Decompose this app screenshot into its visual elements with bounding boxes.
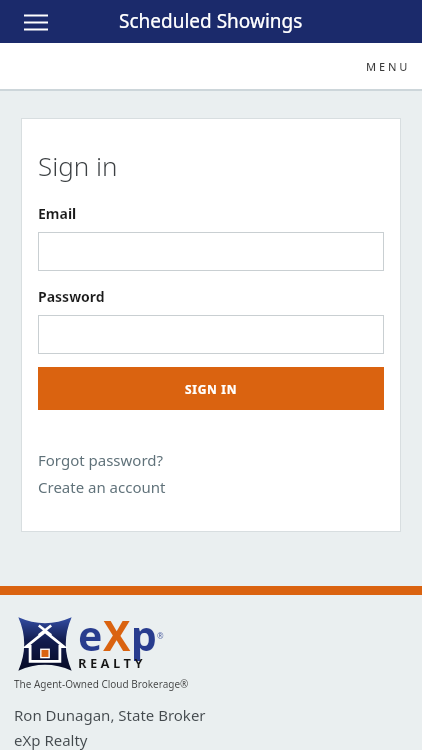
staticText: The Agent-Owned Cloud Brokerage®	[14, 677, 189, 691]
staticText: Ron Dunagan, State Broker	[14, 705, 206, 725]
staticText: eXp Realty	[14, 730, 88, 750]
button[interactable]	[38, 315, 384, 354]
button[interactable]: Forgot password?	[38, 450, 164, 470]
button[interactable]: SIGN IN	[38, 367, 384, 410]
staticText: X	[103, 607, 131, 663]
staticText: Email	[38, 204, 77, 223]
staticText: R E A L T Y	[78, 654, 143, 672]
staticText: Create an account	[38, 477, 166, 497]
staticText: ®	[157, 630, 164, 641]
staticText: M E N U	[366, 59, 408, 74]
staticText: Forgot password?	[38, 450, 164, 470]
staticText: p	[131, 607, 157, 663]
staticText: Scheduled Showings	[119, 8, 303, 34]
button[interactable]: Open navigation menu	[16, 2, 56, 42]
button[interactable]: Create an account	[38, 477, 166, 497]
button[interactable]	[38, 232, 384, 271]
staticText: SIGN IN	[185, 381, 238, 397]
staticText: Password	[38, 287, 105, 306]
button[interactable]: M E N U	[352, 49, 422, 84]
staticText: e	[78, 607, 103, 663]
staticText: Sign in	[38, 148, 118, 183]
